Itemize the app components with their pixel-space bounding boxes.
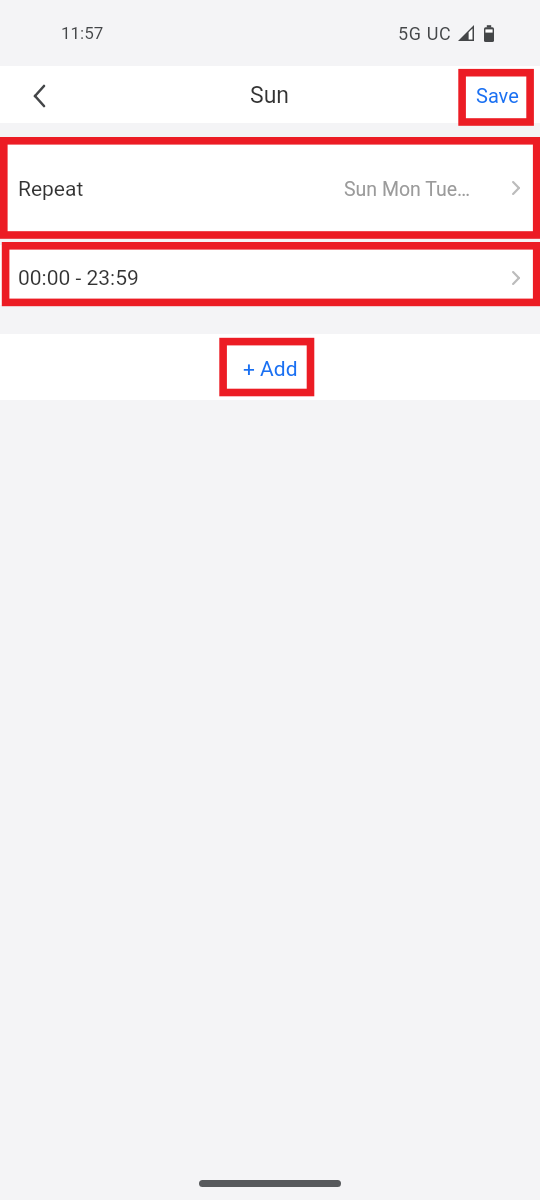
staticText: 00:00 - 23:59 (18, 266, 139, 291)
button[interactable]: Save (455, 72, 540, 119)
staticText: Save (476, 84, 519, 107)
button[interactable]: Repeat (0, 141, 540, 235)
button[interactable]: Back (16, 72, 62, 118)
staticText: + Add (243, 357, 298, 382)
staticText: 11:57 (61, 23, 104, 43)
staticText: Repeat (18, 177, 84, 202)
button[interactable]: + Add (229, 346, 312, 389)
staticText: Sun Mon Tue… (344, 178, 471, 201)
button[interactable]: 00:00 - 23:59 (0, 245, 540, 305)
staticText: Sun (250, 82, 290, 109)
staticText: 5G UC (398, 23, 452, 44)
